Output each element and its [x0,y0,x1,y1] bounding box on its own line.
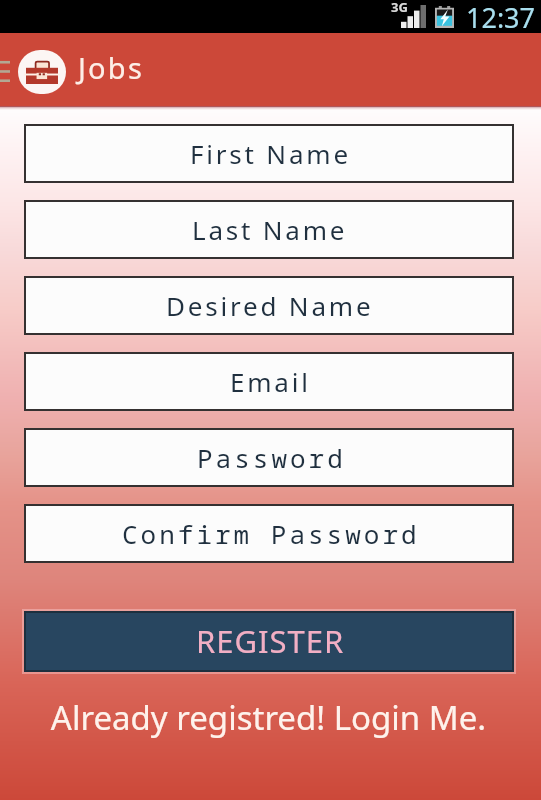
staticText: Desired Name [166,288,374,323]
staticText: REGISTER [196,620,345,662]
staticText: 3G [391,0,408,16]
staticText: Confirm Password [122,516,420,551]
button[interactable]: REGISTER [24,611,514,672]
staticText: Password [197,440,346,475]
button[interactable]: Password [24,428,514,487]
staticText: Last Name [192,212,348,247]
button[interactable]: First Name [24,124,514,183]
button[interactable]: Open navigation menu [0,59,10,85]
staticText: First Name [190,136,351,171]
staticText: 12:37 [466,0,536,32]
staticText: Jobs [78,48,144,87]
button[interactable]: Last Name [24,200,514,259]
button[interactable]: Desired Name [24,276,514,335]
button[interactable]: Already registred! Login Me. [0,695,539,740]
button[interactable]: Confirm Password [24,504,514,563]
button[interactable]: Email [24,352,514,411]
staticText: Email [230,364,311,399]
